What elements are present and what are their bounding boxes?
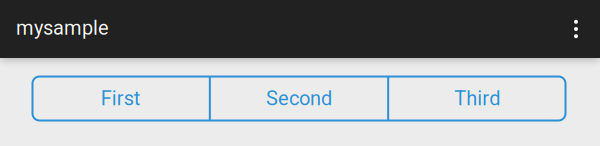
staticText: Third [454, 87, 500, 110]
button[interactable]: More options [561, 7, 591, 51]
staticText: mysample [16, 16, 109, 40]
staticText: Second [266, 87, 332, 110]
staticText: First [101, 87, 141, 110]
button[interactable]: Second [211, 76, 387, 120]
button[interactable]: First [32, 76, 209, 120]
button[interactable]: Third [389, 76, 565, 120]
